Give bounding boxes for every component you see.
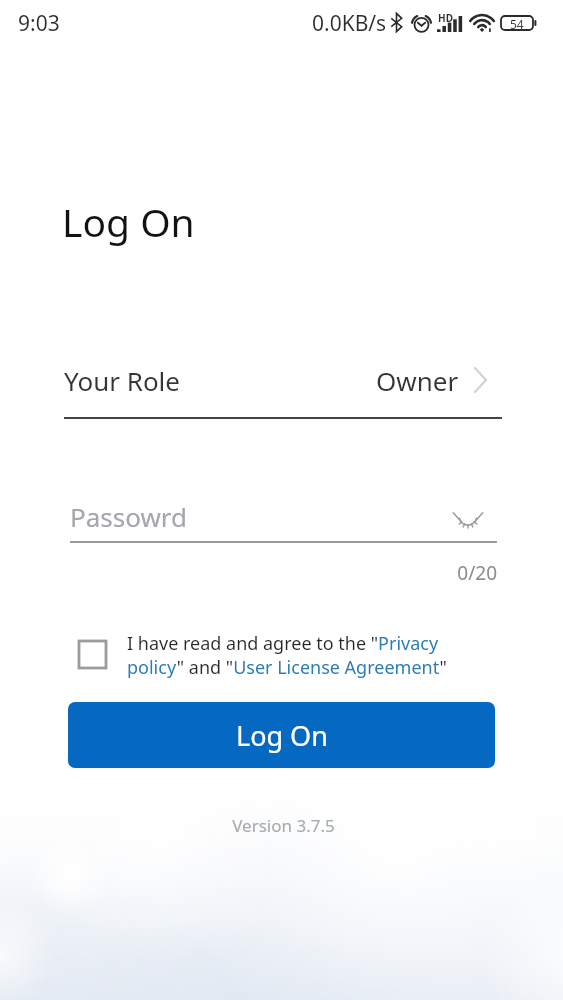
button[interactable]: Show password xyxy=(448,501,488,541)
staticText: Owner xyxy=(376,363,459,398)
staticText: 0.0KB/s xyxy=(312,9,387,38)
staticText: 0/20 xyxy=(0,560,497,586)
staticText: 54 xyxy=(510,16,524,30)
staticText: Version 3.7.5 xyxy=(2,814,563,837)
staticText: Log On xyxy=(62,195,195,248)
staticText: HD xyxy=(438,11,453,25)
button[interactable]: Agree to terms checkbox xyxy=(79,641,106,668)
button[interactable]: Log On xyxy=(68,702,495,768)
staticText: Log On xyxy=(236,717,328,754)
staticText: Your Role xyxy=(64,363,180,398)
button[interactable]: Your Role xyxy=(64,351,487,409)
button[interactable]: I have read and agree to the "Privacy po… xyxy=(127,631,457,679)
staticText: Passowrd xyxy=(70,499,188,534)
staticText: 9:03 xyxy=(18,9,60,38)
